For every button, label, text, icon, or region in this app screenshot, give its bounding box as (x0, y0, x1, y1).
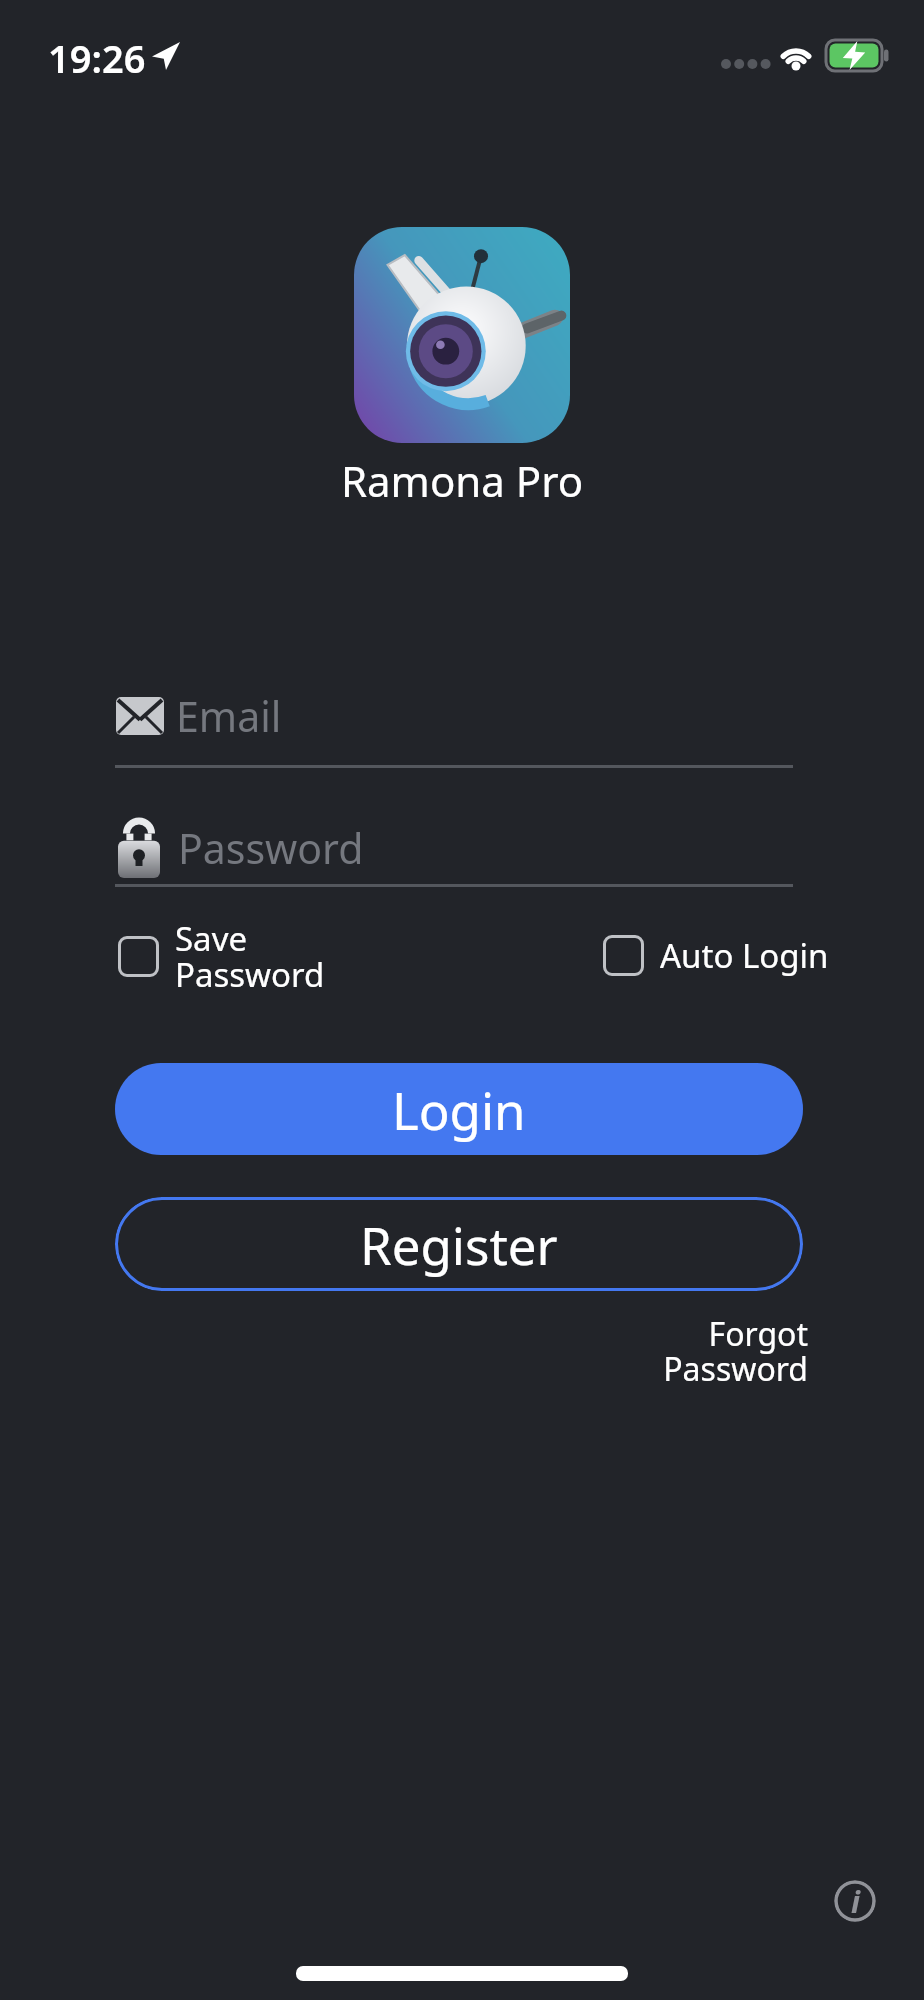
staticText: Password (178, 820, 364, 876)
staticText: Email (176, 688, 282, 744)
staticText: Save Password (175, 916, 325, 997)
staticText: Ramona Pro (0, 452, 924, 509)
button[interactable]: Forgot Password (663, 1312, 808, 1391)
staticText: Register (360, 1210, 558, 1279)
staticText: 19:26 (48, 32, 146, 84)
button[interactable]: Save Password (118, 916, 325, 997)
staticText: Auto Login (660, 933, 829, 978)
button[interactable]: Login (115, 1063, 803, 1155)
button[interactable]: Email (116, 688, 676, 744)
button[interactable]: Register (115, 1197, 803, 1291)
staticText: i (851, 1881, 860, 1922)
button[interactable]: i (834, 1880, 876, 1922)
button[interactable]: Auto Login (603, 933, 829, 978)
button[interactable]: Password (118, 818, 678, 878)
staticText: Login (392, 1075, 526, 1144)
